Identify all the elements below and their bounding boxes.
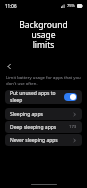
staticText: Sleeping apps: [10, 111, 72, 118]
staticText: 11:06: [5, 3, 17, 9]
staticText: Put unused apps to sleep: [10, 90, 64, 104]
staticText: 173: [69, 124, 77, 130]
button[interactable]: Deep sleeping apps: [5, 121, 82, 133]
staticText: Never sleeping apps: [10, 137, 72, 144]
button[interactable]: Sleeping apps: [5, 108, 82, 120]
button[interactable]: Back: [1, 59, 17, 73]
staticText: Deep sleeping apps: [10, 124, 69, 131]
staticText: Background usage limits: [8, 19, 79, 51]
button[interactable]: Never sleeping apps: [5, 134, 82, 146]
button[interactable]: Put unused apps to sleep: [5, 90, 82, 104]
staticText: Limit battery usage for apps that you do…: [6, 74, 81, 86]
staticText: 75%: [67, 3, 75, 8]
